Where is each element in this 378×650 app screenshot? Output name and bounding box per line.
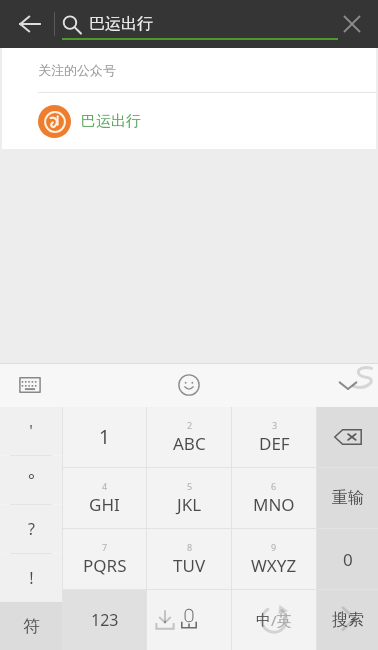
- button[interactable]: 2: [147, 407, 231, 467]
- button[interactable]: 5: [147, 468, 231, 528]
- staticText: !: [29, 567, 34, 589]
- button[interactable]: °: [0, 456, 62, 504]
- staticText: °: [28, 469, 35, 491]
- button[interactable]: 搜索: [317, 590, 378, 650]
- staticText: TUV: [173, 554, 206, 577]
- staticText: 1: [99, 424, 110, 450]
- staticText: JKL: [177, 493, 202, 516]
- button[interactable]: 8: [147, 529, 231, 589]
- button[interactable]: 9: [232, 529, 316, 589]
- staticText: PQRS: [83, 554, 127, 577]
- button[interactable]: 7: [63, 529, 146, 589]
- staticText: 3: [272, 419, 278, 431]
- button[interactable]: 4: [63, 468, 146, 528]
- button[interactable]: 符: [0, 602, 62, 650]
- button[interactable]: Backspace: [317, 407, 378, 467]
- staticText: /英: [271, 610, 292, 630]
- staticText: 2: [187, 419, 193, 431]
- staticText: ABC: [173, 432, 206, 455]
- button[interactable]: 6: [232, 468, 316, 528]
- button[interactable]: Clear: [330, 2, 374, 46]
- button[interactable]: 中: [232, 590, 316, 650]
- staticText: 中: [256, 611, 271, 630]
- button[interactable]: Keyboard layout: [8, 363, 52, 407]
- staticText: 0: [343, 548, 353, 571]
- button[interactable]: 重输: [317, 468, 378, 528]
- button[interactable]: 0: [317, 529, 378, 589]
- staticText: 符: [23, 616, 40, 637]
- staticText: ?: [28, 518, 35, 540]
- button[interactable]: 巴运出行: [2, 93, 376, 149]
- staticText: 8: [187, 541, 193, 553]
- button[interactable]: Voice input: [147, 590, 231, 650]
- button[interactable]: Back: [6, 0, 54, 48]
- staticText: 5: [187, 480, 193, 492]
- staticText: ': [29, 420, 33, 442]
- staticText: 巴运出行: [81, 112, 141, 131]
- staticText: 7: [102, 541, 108, 553]
- staticText: 关注的公众号: [38, 62, 116, 78]
- staticText: DEF: [259, 432, 290, 455]
- button[interactable]: Hide keyboard: [326, 363, 370, 407]
- button[interactable]: 123: [63, 590, 146, 650]
- button[interactable]: Emoji: [167, 363, 211, 407]
- button[interactable]: ': [0, 407, 62, 455]
- staticText: 重输: [332, 488, 364, 508]
- staticText: 123: [91, 609, 119, 631]
- staticText: 4: [102, 480, 108, 492]
- staticText: 巴运出行: [89, 14, 153, 34]
- button[interactable]: !: [0, 554, 62, 602]
- button[interactable]: 1: [63, 407, 146, 467]
- staticText: 9: [271, 541, 277, 553]
- staticText: 搜索: [332, 610, 364, 630]
- button[interactable]: 3: [232, 407, 316, 467]
- staticText: WXYZ: [251, 554, 297, 577]
- staticText: MNO: [253, 493, 295, 516]
- button[interactable]: 巴运出行: [62, 0, 338, 48]
- button[interactable]: ?: [0, 505, 62, 553]
- staticText: 6: [271, 480, 277, 492]
- staticText: GHI: [89, 493, 120, 516]
